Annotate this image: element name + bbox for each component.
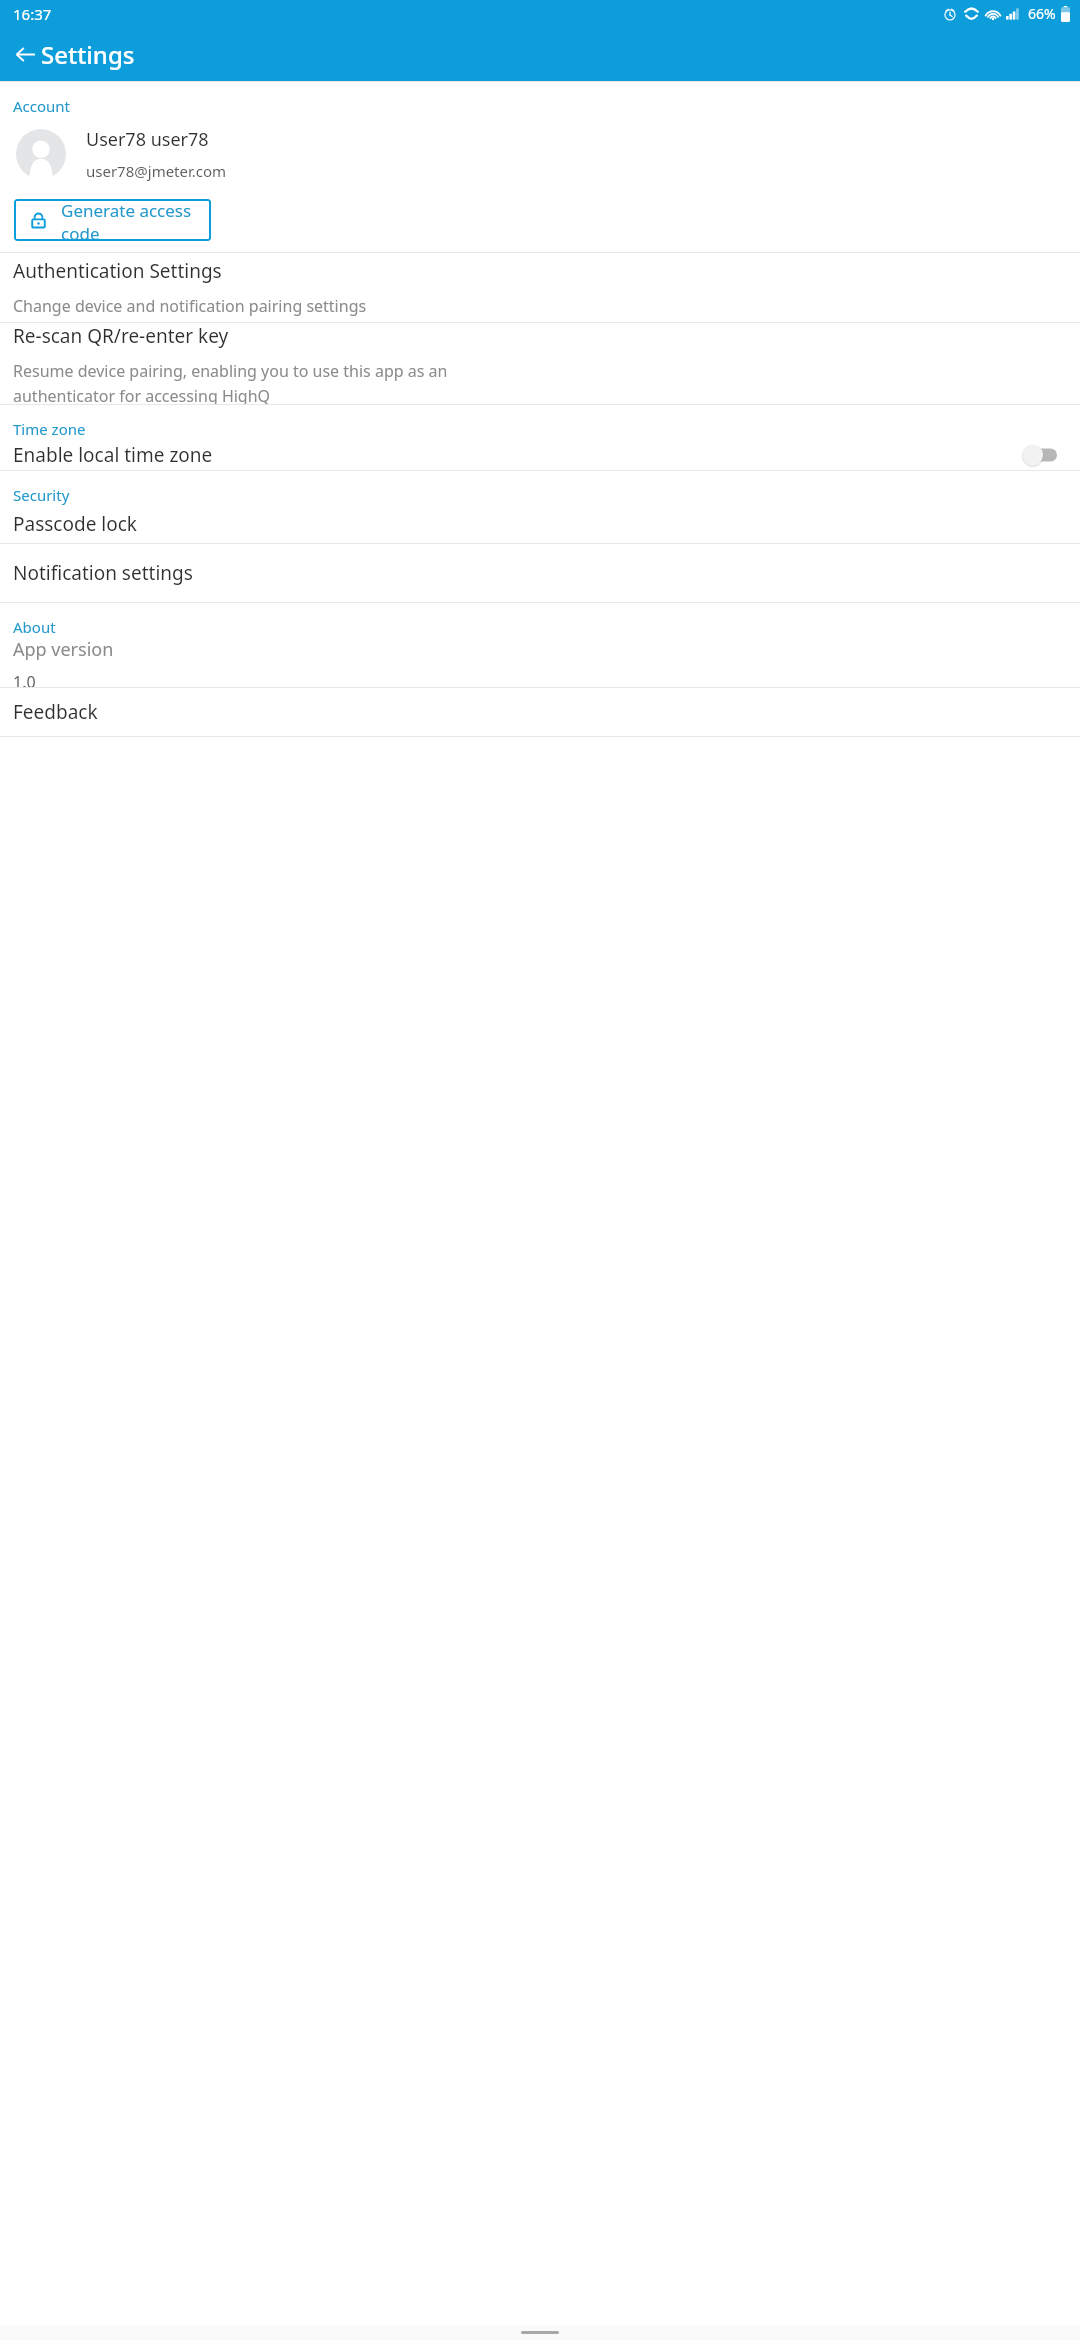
staticText: Authentication Settings bbox=[13, 258, 222, 284]
staticText: user78@jmeter.com bbox=[86, 161, 227, 181]
staticText: Notification settings bbox=[13, 560, 193, 586]
staticText: 66% bbox=[1028, 4, 1056, 23]
staticText: Feedback bbox=[13, 699, 98, 725]
button[interactable]: Generate access code bbox=[14, 199, 211, 241]
staticText: Time zone bbox=[13, 419, 86, 439]
staticText: App version bbox=[13, 637, 114, 662]
button[interactable]: Enable local time zone bbox=[0, 439, 1080, 470]
staticText: 16:37 bbox=[13, 4, 52, 24]
staticText: Account bbox=[13, 96, 71, 116]
button[interactable]: Passcode lock bbox=[0, 505, 1080, 543]
staticText: Resume device pairing, enabling you to u… bbox=[13, 360, 448, 404]
button[interactable]: Feedback bbox=[0, 688, 1080, 736]
other: Enable local time zone bbox=[1021, 444, 1057, 466]
button[interactable]: Notification settings bbox=[0, 544, 1080, 602]
staticText: Security bbox=[13, 485, 70, 505]
button[interactable]: Re-scan QR/re-enter key bbox=[0, 323, 1080, 404]
staticText: Change device and notification pairing s… bbox=[13, 295, 367, 317]
staticText: Settings bbox=[41, 38, 135, 71]
staticText: User78 user78 bbox=[86, 127, 209, 152]
staticText: Generate access code bbox=[61, 199, 211, 241]
staticText: Enable local time zone bbox=[13, 442, 1021, 468]
staticText: Passcode lock bbox=[13, 511, 137, 537]
button[interactable]: App version bbox=[0, 637, 1080, 687]
staticText: About bbox=[13, 617, 56, 637]
staticText: Re-scan QR/re-enter key bbox=[13, 323, 229, 349]
staticText: 1.0 bbox=[13, 671, 36, 687]
button[interactable]: Authentication Settings bbox=[0, 253, 1080, 322]
button[interactable]: Back bbox=[2, 31, 48, 77]
